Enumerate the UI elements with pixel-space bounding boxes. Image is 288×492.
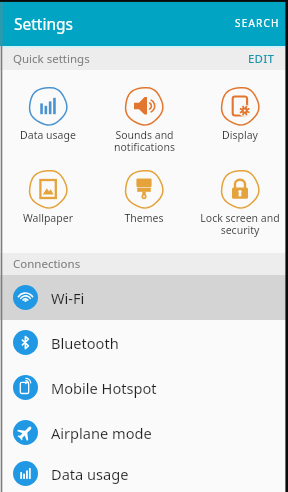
staticText: Display [222,128,258,142]
button[interactable]: Data usage [0,86,96,142]
button[interactable]: Bluetooth [0,320,288,365]
button[interactable]: Data usage [0,455,288,492]
button[interactable]: Lock screen and security [192,169,288,237]
button[interactable]: Wi-Fi [0,275,288,320]
staticText: Settings [14,13,73,34]
button[interactable]: SEARCH [225,7,288,39]
staticText: Quick settings [13,51,90,67]
button[interactable]: Mobile Hotspot [0,365,288,410]
staticText: Data usage [20,128,76,142]
button[interactable]: EDIT [238,48,288,70]
staticText: Wi-Fi [51,288,85,308]
button[interactable]: Display [192,86,288,142]
staticText: Bluetooth [51,333,119,353]
staticText: SEARCH [235,16,280,30]
staticText: Lock screen and security [200,211,280,237]
button[interactable]: Airplane mode [0,410,288,455]
button[interactable]: Wallpaper [0,169,96,225]
staticText: Connections [13,256,81,272]
staticText: Data usage [51,464,129,484]
staticText: Sounds and notifications [114,128,175,154]
staticText: Wallpaper [23,211,73,225]
button[interactable]: Themes [96,169,192,225]
staticText: EDIT [248,51,275,67]
staticText: Airplane mode [51,423,152,443]
staticText: Mobile Hotspot [51,378,157,398]
button[interactable]: Sounds and notifications [96,86,192,154]
staticText: Themes [124,211,164,225]
